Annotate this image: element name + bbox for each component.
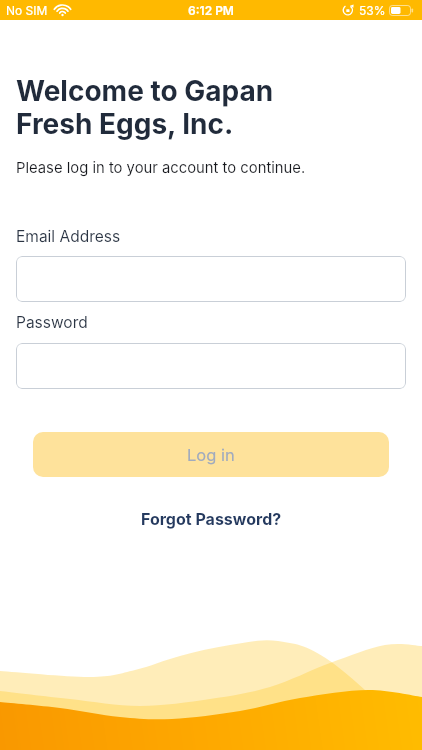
staticText: Email Address [16, 227, 121, 246]
staticText: Log in [187, 445, 235, 465]
staticText: 53% [359, 3, 386, 18]
button[interactable]: Log in [33, 432, 389, 477]
staticText: 6:12 PM [0, 3, 422, 18]
button[interactable] [16, 343, 406, 389]
staticText: Please log in to your account to continu… [16, 159, 306, 177]
staticText: Welcome to Gapan Fresh Eggs, Inc. [16, 74, 274, 141]
staticText: Password [16, 313, 88, 332]
button[interactable]: Forgot Password? [141, 509, 282, 528]
staticText: Forgot Password? [141, 509, 282, 528]
button[interactable] [16, 256, 406, 302]
staticText: No SIM [6, 3, 48, 18]
